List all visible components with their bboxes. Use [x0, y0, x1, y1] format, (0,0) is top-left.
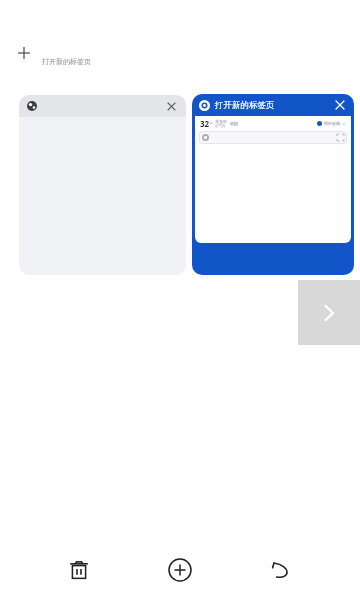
button[interactable]: 撤销	[259, 548, 303, 592]
button[interactable]: 关闭标签页	[164, 99, 178, 113]
staticText: 32	[200, 118, 210, 129]
staticText: 晴朗	[230, 121, 238, 126]
button[interactable]: 关闭标签页	[19, 95, 186, 275]
staticText: 打开新的标签页	[42, 57, 91, 66]
button[interactable]: 新建标签页	[158, 548, 202, 592]
staticText: 北京市	[215, 119, 227, 124]
staticText: 我的收藏	[324, 121, 340, 126]
button[interactable]: 搜索	[202, 131, 344, 144]
staticText: °	[210, 120, 213, 128]
button[interactable]: 打开新的标签页	[10, 40, 120, 74]
button[interactable]: 下一页	[298, 280, 360, 345]
button[interactable]: 打开新的标签页	[192, 94, 354, 275]
button[interactable]: 关闭所有标签页	[57, 548, 101, 592]
staticText: 空气良	[215, 124, 226, 128]
button[interactable]: 关闭标签页	[333, 98, 347, 112]
staticText: 打开新的标签页	[215, 100, 275, 111]
